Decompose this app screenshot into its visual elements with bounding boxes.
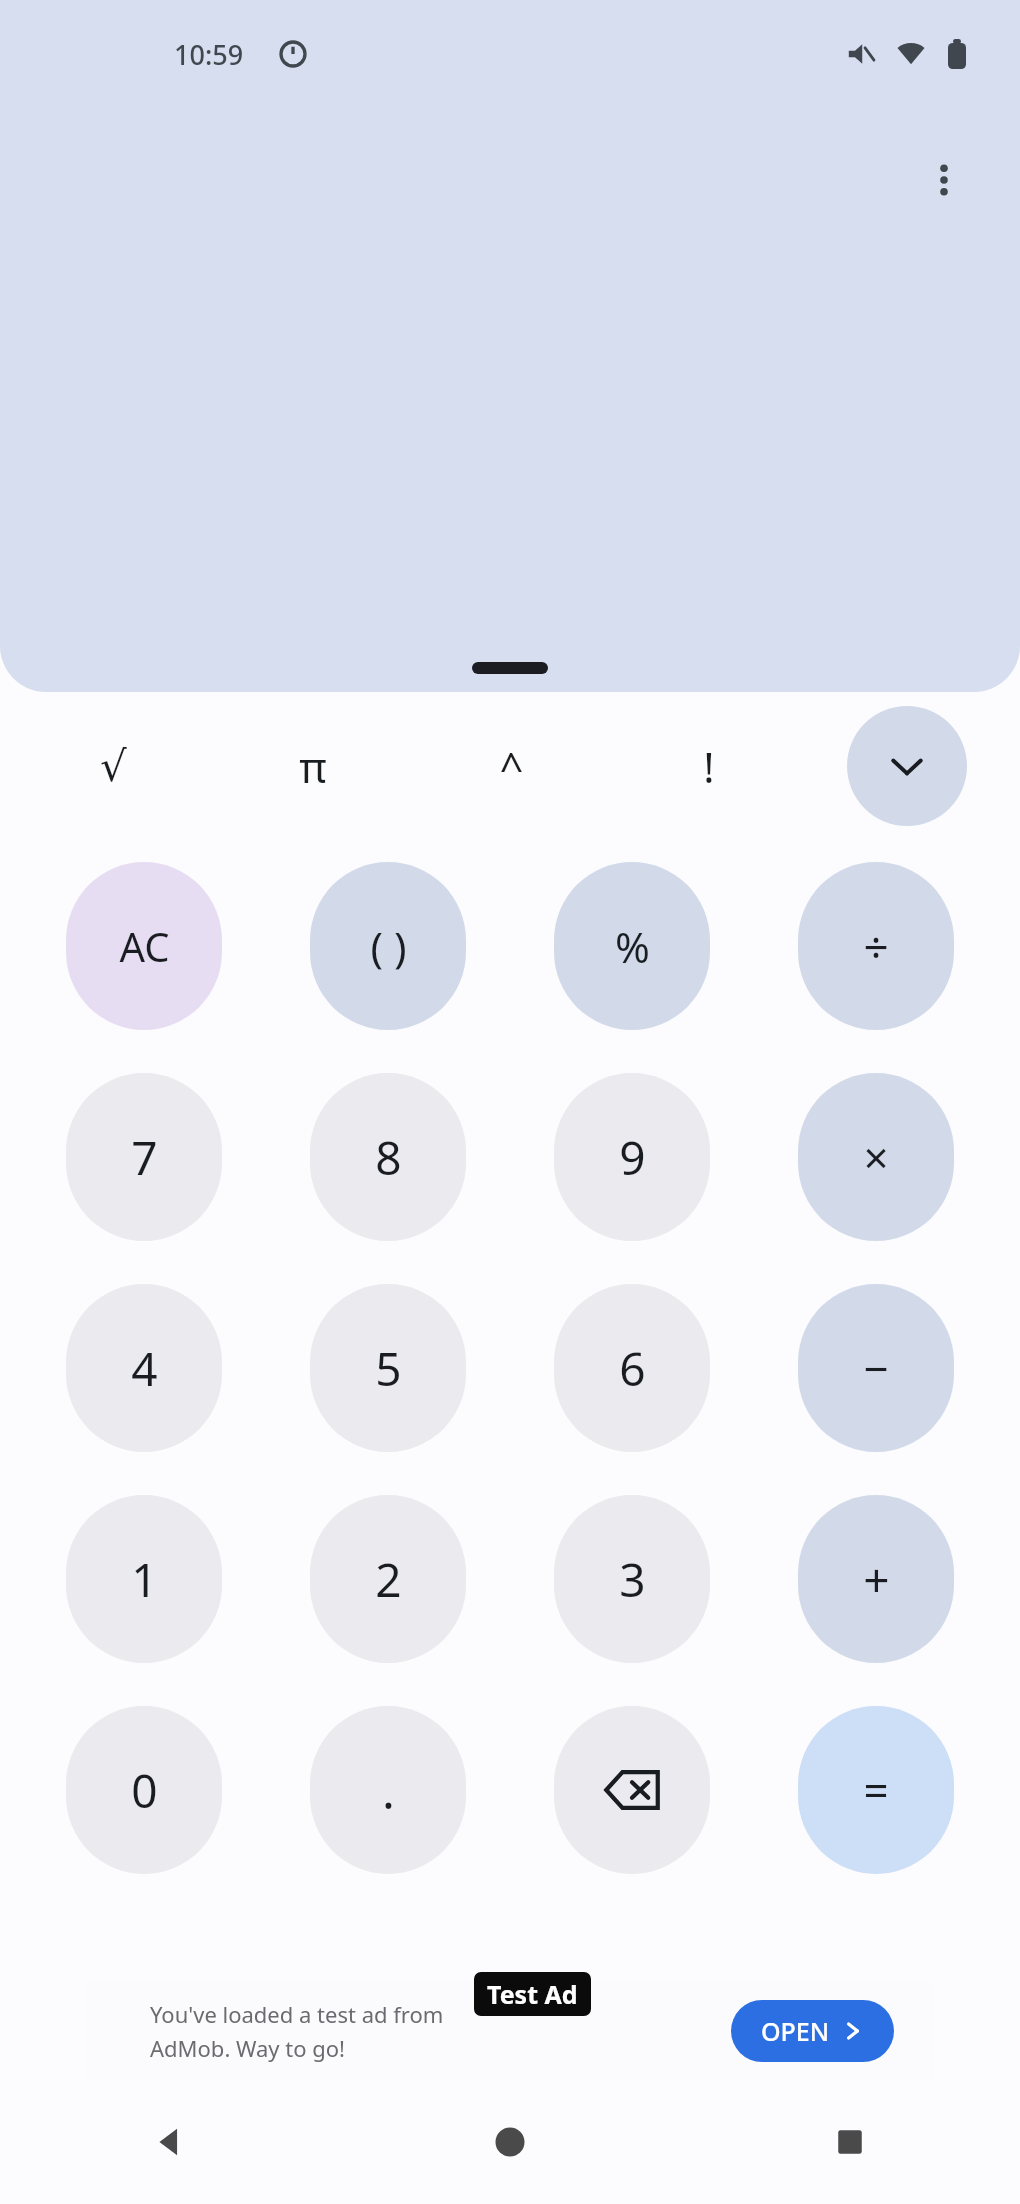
staticText: 9 [619, 1126, 646, 1189]
button[interactable]: ÷ [798, 862, 954, 1030]
button[interactable]: Back [0, 2080, 340, 2204]
button[interactable]: 9 [554, 1073, 710, 1241]
button[interactable]: 1 [66, 1495, 222, 1663]
button[interactable]: 8 [310, 1073, 466, 1241]
staticText: ^ [499, 738, 524, 795]
button[interactable]: You've loaded a test ad from [86, 1982, 934, 2080]
staticText: You've loaded a test ad from [150, 1999, 444, 2029]
button[interactable]: % [554, 862, 710, 1030]
button[interactable]: + [798, 1495, 954, 1663]
staticText: 2 [375, 1548, 402, 1611]
staticText: π [299, 738, 327, 795]
button[interactable]: 0 [66, 1706, 222, 1874]
button[interactable]: 2 [310, 1495, 466, 1663]
staticText: 7 [131, 1126, 158, 1189]
staticText: Test Ad [487, 1977, 578, 2011]
button[interactable]: × [798, 1073, 954, 1241]
button[interactable]: Recent apps [680, 2080, 1020, 2204]
button[interactable]: Backspace [554, 1706, 710, 1874]
staticText: 5 [375, 1337, 402, 1400]
staticText: AdMob. Way to go! [150, 2033, 346, 2063]
button[interactable]: OPEN [731, 2000, 894, 2062]
staticText: 1 [131, 1548, 158, 1611]
staticText: 8 [375, 1126, 402, 1189]
button[interactable]: π [213, 692, 412, 840]
button[interactable]: 5 [310, 1284, 466, 1452]
staticText: − [863, 1338, 889, 1398]
staticText: = [863, 1760, 889, 1820]
button[interactable]: Show more functions [847, 706, 967, 826]
button[interactable]: 4 [66, 1284, 222, 1452]
button[interactable]: 6 [554, 1284, 710, 1452]
staticText: 6 [619, 1337, 646, 1400]
button[interactable]: More options [896, 132, 992, 228]
staticText: ÷ [863, 916, 889, 976]
staticText: 0 [131, 1759, 158, 1822]
staticText: 10:59 [174, 36, 244, 73]
staticText: AC [119, 919, 170, 973]
button[interactable]: ^ [412, 692, 610, 840]
button[interactable]: 3 [554, 1495, 710, 1663]
button[interactable]: AC [66, 862, 222, 1030]
staticText: √ [100, 742, 127, 791]
button[interactable]: ! [610, 692, 808, 840]
button[interactable]: . [310, 1706, 466, 1874]
button[interactable]: Home [340, 2080, 680, 2204]
staticText: × [863, 1127, 889, 1187]
staticText: % [615, 918, 650, 975]
staticText: 4 [131, 1337, 158, 1400]
button[interactable]: − [798, 1284, 954, 1452]
staticText: ! [703, 738, 715, 795]
button[interactable]: 7 [66, 1073, 222, 1241]
staticText: ( ) [370, 918, 407, 975]
button[interactable]: ( ) [310, 862, 466, 1030]
staticText: 3 [619, 1548, 646, 1611]
staticText: + [863, 1548, 890, 1611]
staticText: OPEN [761, 2014, 830, 2048]
button[interactable]: = [798, 1706, 954, 1874]
staticText: . [382, 1758, 395, 1823]
button[interactable]: √ [14, 692, 213, 840]
